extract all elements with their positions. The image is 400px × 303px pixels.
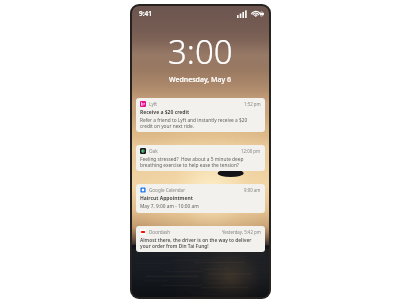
staticText: 1:52 pm (244, 101, 261, 107)
staticText: 12:00 pm (241, 148, 261, 154)
staticText: Haircut Appointment (140, 195, 193, 202)
staticText: Almost there, the driver is on the way t… (140, 237, 261, 249)
staticText: Oak (149, 148, 158, 154)
staticText: Feeling stressed? How about a 5 minute d… (140, 156, 261, 168)
other: Doordash (140, 229, 146, 235)
staticText: Wednesday, May 6 (169, 75, 232, 85)
button[interactable]: Lyft (136, 98, 265, 132)
other: Oak (140, 148, 146, 154)
staticText: May 7, 9:00 am - 10:00 am (140, 203, 199, 210)
staticText: Refer a friend to Lyft and instantly rec… (140, 117, 261, 129)
staticText: Google Calendar (149, 187, 186, 193)
staticText: Yesterday, 5:42 pm (222, 229, 261, 235)
button[interactable]: Doordash (136, 226, 265, 252)
staticText: 3:00 (168, 29, 233, 74)
staticText: Doordash (149, 229, 171, 235)
button[interactable]: Oak (136, 145, 265, 171)
other: Lyft (140, 101, 146, 107)
other: Google Calendar (140, 187, 146, 193)
staticText: Lyft (149, 101, 157, 107)
button[interactable]: Google Calendar (136, 184, 265, 213)
staticText: 9:41 (139, 9, 152, 18)
staticText: Receive a $20 credit (140, 109, 190, 116)
staticText: 9:00 am (244, 187, 261, 193)
